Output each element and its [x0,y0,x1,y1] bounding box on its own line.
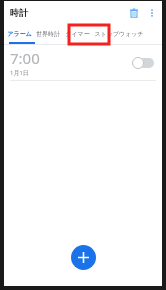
button[interactable]: 世界時計 [34,24,62,44]
button[interactable]: Add alarm [71,245,96,270]
staticText: 7:00 [10,48,40,68]
staticText: アラーム [7,30,32,38]
staticText: ストップウォッチ [94,30,144,38]
staticText: 世界時計 [36,30,60,38]
staticText: タイマー [65,30,90,38]
button[interactable]: タイマー [62,24,92,44]
button[interactable]: 7:00 [4,45,162,80]
staticText: 1月1日 [10,69,29,77]
button[interactable]: Toggle alarm [132,55,156,71]
button[interactable]: More options [144,5,160,21]
button[interactable]: アラーム [4,24,34,44]
staticText: 時計 [10,7,28,18]
button[interactable]: Delete [125,4,143,22]
button[interactable]: ストップウォッチ [92,24,146,44]
